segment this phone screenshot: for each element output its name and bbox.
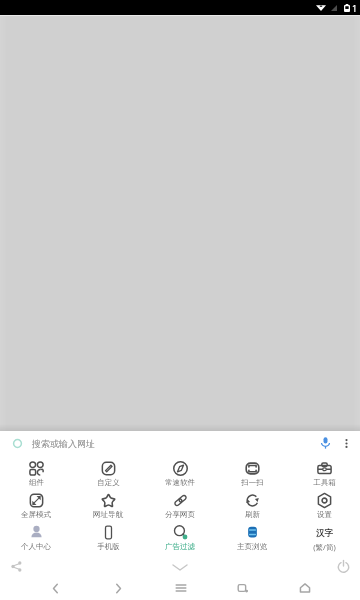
- staticText: 个人中心: [21, 542, 51, 551]
- staticText: (繁/简): [313, 542, 336, 552]
- button[interactable]: Forward: [87, 576, 150, 600]
- button[interactable]: 分享网页: [144, 490, 216, 522]
- button[interactable]: 工具箱: [288, 458, 360, 490]
- button[interactable]: Tabs: [212, 576, 274, 600]
- button[interactable]: 全屏模式: [0, 490, 72, 522]
- button[interactable]: 设置: [288, 490, 360, 522]
- button[interactable]: 自定义: [72, 458, 144, 490]
- button[interactable]: 个人中心: [0, 522, 72, 554]
- button[interactable]: 刷新: [216, 490, 288, 522]
- button[interactable]: 组件: [0, 458, 72, 490]
- button[interactable]: Collapse panel: [165, 557, 195, 577]
- button[interactable]: More options: [336, 434, 356, 452]
- staticText: 主页浏览: [237, 542, 267, 551]
- button[interactable]: Voice search: [315, 434, 335, 452]
- button[interactable]: 常速软件: [144, 458, 216, 490]
- staticText: 扫一扫: [241, 478, 264, 487]
- staticText: 1: [352, 2, 358, 14]
- staticText: 分享网页: [165, 510, 195, 519]
- button[interactable]: Share: [6, 556, 27, 577]
- staticText: 手机版: [97, 542, 120, 551]
- button[interactable]: 主页浏览: [216, 522, 288, 554]
- staticText: 刷新: [245, 510, 260, 519]
- button[interactable]: 汉字: [288, 522, 360, 554]
- staticText: 搜索或输入网址: [32, 438, 95, 449]
- staticText: 网址导航: [93, 510, 123, 519]
- staticText: 组件: [29, 478, 44, 487]
- button[interactable]: Menu: [150, 576, 212, 600]
- button[interactable]: 广告过滤: [144, 522, 216, 554]
- staticText: 常速软件: [165, 478, 195, 487]
- button[interactable]: 手机版: [72, 522, 144, 554]
- staticText: 汉字: [316, 528, 333, 539]
- staticText: 设置: [317, 510, 332, 519]
- staticText: 工具箱: [313, 478, 336, 487]
- button[interactable]: 扫一扫: [216, 458, 288, 490]
- staticText: 全屏模式: [21, 510, 51, 519]
- button[interactable]: Exit: [333, 556, 354, 577]
- button[interactable]: Back: [24, 576, 87, 600]
- button[interactable]: 网址导航: [72, 490, 144, 522]
- staticText: 广告过滤: [165, 542, 195, 551]
- button[interactable]: Home: [274, 576, 336, 600]
- staticText: 自定义: [97, 478, 120, 487]
